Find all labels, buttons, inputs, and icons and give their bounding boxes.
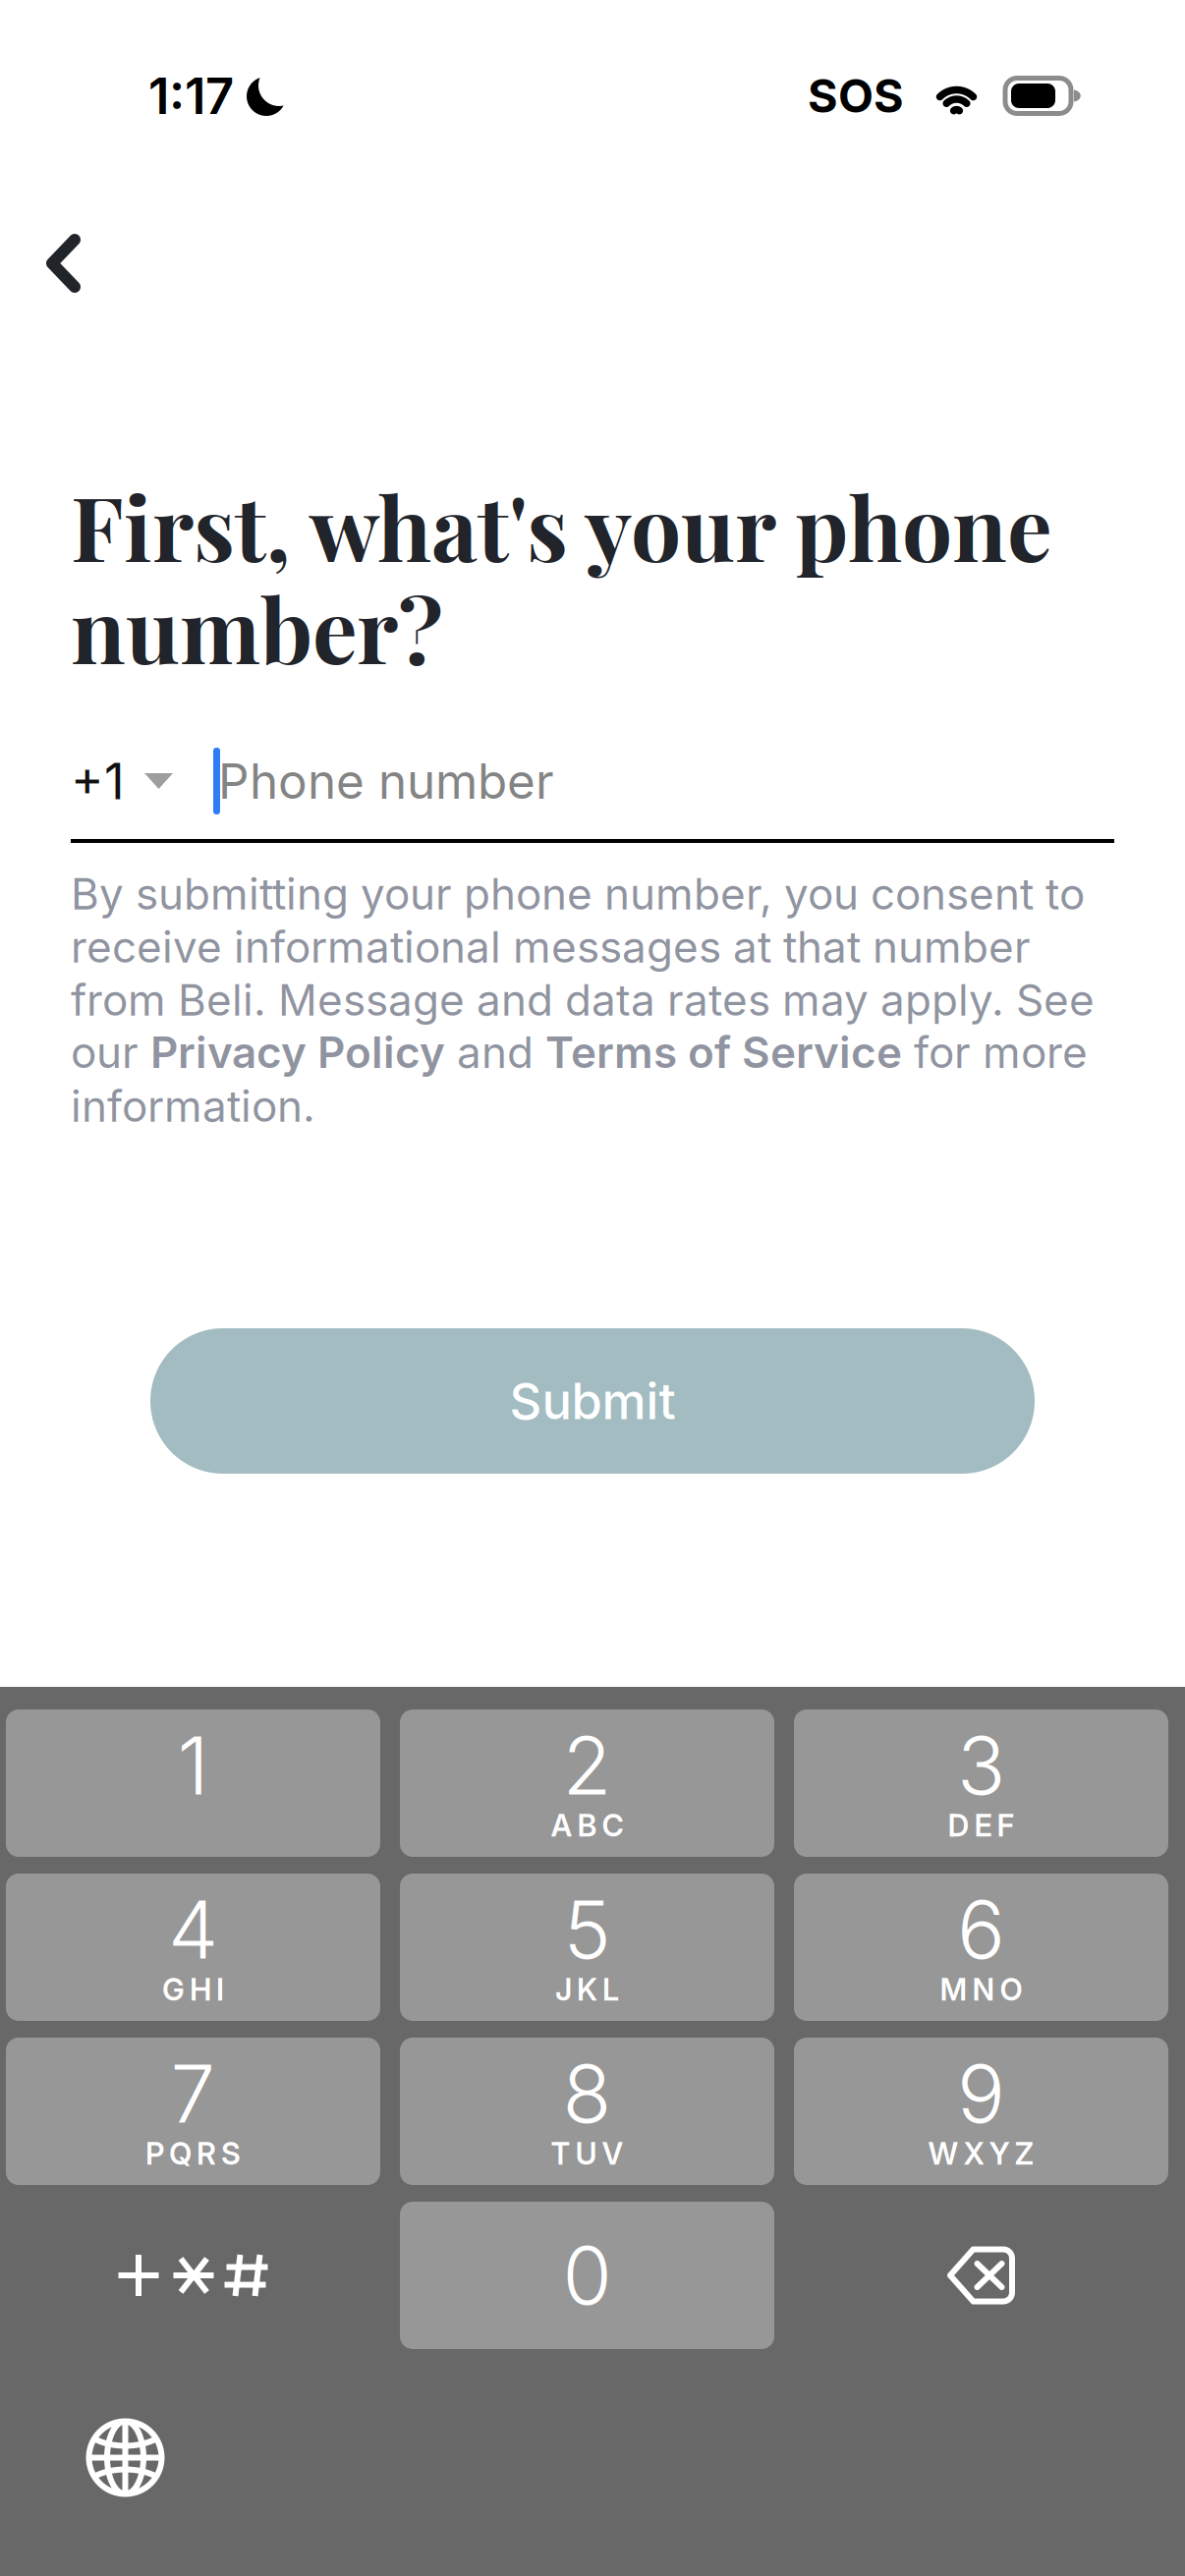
staticText: 3 [957,1717,1005,1814]
staticText: GHI [162,1971,224,2008]
staticText: By submitting your phone number, you con… [71,868,1085,920]
staticText: information. [71,1080,315,1132]
staticText: 0 [563,2227,612,2324]
staticText: JKL [555,1971,619,2008]
staticText: First, what's your phone [71,466,1052,584]
staticText: 5 [564,1881,611,1978]
staticText: receive informational messages at that n… [71,921,1031,973]
staticText: MNO [940,1971,1022,2008]
button[interactable]: Plus star pound [6,2202,380,2349]
staticText: Submit [509,1371,676,1431]
button[interactable]: 2 [400,1709,774,1857]
staticText: 6 [957,1881,1005,1978]
staticText: 7 [170,2045,216,2142]
staticText: 2 [563,1717,612,1814]
staticText: TUV [551,2135,623,2172]
button[interactable]: 8 [400,2038,774,2185]
staticText: 1 [177,1717,209,1814]
staticText: our Privacy Policy and Terms of Service … [71,1027,1088,1078]
staticText: SOS [808,68,904,124]
staticText: 1:17 [148,66,234,126]
button[interactable]: 7 [6,2038,380,2185]
staticText: +1 [71,751,125,811]
button[interactable]: 5 [400,1874,774,2021]
button[interactable]: Country code +1 [71,733,179,829]
staticText: from Beli. Message and data rates may ap… [71,974,1095,1026]
staticText: WXYZ [928,2135,1034,2172]
button[interactable]: Delete [794,2202,1168,2349]
button[interactable]: 3 [794,1709,1168,1857]
staticText: ABC [551,1807,623,1844]
staticText: DEF [948,1807,1015,1844]
button[interactable]: 9 [794,2038,1168,2185]
button[interactable]: 0 [400,2202,774,2349]
staticText: number? [71,568,443,687]
staticText: Phone number [218,752,554,810]
button[interactable]: Next keyboard [0,2349,195,2517]
button[interactable]: Submit [150,1328,1035,1474]
staticText: 4 [168,1881,218,1978]
staticText: 8 [563,2045,612,2142]
button[interactable]: Back [0,152,120,322]
button[interactable]: 6 [794,1874,1168,2021]
button[interactable]: 1 [6,1709,380,1857]
staticText: PQRS [145,2135,241,2172]
staticText: 9 [957,2045,1005,2142]
button[interactable]: 4 [6,1874,380,2021]
